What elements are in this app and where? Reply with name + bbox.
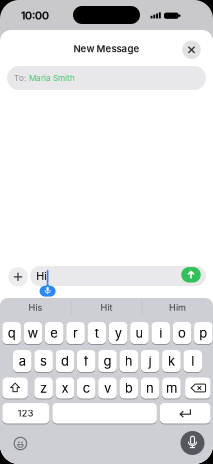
button[interactable]: 123 bbox=[2, 402, 49, 424]
staticText: Hi bbox=[36, 269, 47, 283]
button[interactable]: y bbox=[109, 321, 127, 344]
staticText: h bbox=[125, 353, 133, 369]
button[interactable]: His bbox=[2, 298, 68, 317]
staticText: b bbox=[125, 380, 133, 396]
staticText: e bbox=[50, 325, 58, 341]
staticText: d bbox=[61, 353, 69, 369]
button[interactable]: t bbox=[87, 321, 106, 344]
button[interactable]: j bbox=[141, 349, 159, 372]
button[interactable]: b bbox=[119, 377, 138, 399]
staticText: q bbox=[8, 325, 16, 341]
staticText: y bbox=[115, 325, 122, 341]
button[interactable]: k bbox=[162, 349, 181, 372]
button[interactable]: a bbox=[13, 349, 32, 372]
button[interactable]: Close bbox=[182, 40, 201, 59]
button[interactable]: Space bbox=[52, 402, 157, 424]
button[interactable]: p bbox=[194, 321, 213, 344]
button[interactable]: v bbox=[98, 377, 117, 399]
button[interactable]: g bbox=[98, 349, 117, 372]
staticText: Him bbox=[169, 302, 186, 313]
button[interactable]: Him bbox=[144, 298, 210, 317]
staticText: z bbox=[40, 380, 47, 396]
button[interactable]: z bbox=[34, 377, 53, 399]
button[interactable]: Dictate bbox=[180, 431, 204, 455]
button[interactable]: r bbox=[66, 321, 85, 344]
button[interactable]: Dictation bbox=[40, 283, 56, 297]
button[interactable]: h bbox=[119, 349, 138, 372]
staticText: k bbox=[168, 353, 175, 369]
staticText: n bbox=[146, 380, 154, 396]
button[interactable]: x bbox=[56, 377, 74, 399]
button[interactable]: w bbox=[24, 321, 42, 344]
staticText: r bbox=[73, 325, 78, 341]
staticText: s bbox=[40, 353, 47, 369]
staticText: x bbox=[61, 380, 68, 396]
button[interactable]: i bbox=[151, 321, 170, 344]
staticText: i bbox=[159, 325, 162, 341]
button[interactable]: q bbox=[2, 321, 21, 344]
staticText: j bbox=[149, 353, 152, 369]
button[interactable]: Delete bbox=[185, 377, 211, 399]
button[interactable]: l bbox=[183, 349, 202, 372]
button[interactable]: c bbox=[77, 377, 95, 399]
button[interactable]: Send bbox=[181, 267, 201, 283]
staticText: f bbox=[84, 353, 89, 369]
button[interactable]: f bbox=[77, 349, 95, 372]
button[interactable]: o bbox=[173, 321, 191, 344]
staticText: c bbox=[83, 380, 90, 396]
button[interactable]: m bbox=[162, 377, 181, 399]
button[interactable]: Hit bbox=[73, 298, 139, 317]
staticText: t bbox=[95, 325, 99, 341]
staticText: Maria Smith bbox=[29, 73, 75, 83]
button[interactable]: To: bbox=[7, 66, 206, 90]
staticText: a bbox=[19, 353, 26, 369]
staticText: To: bbox=[14, 73, 26, 83]
staticText: 123 bbox=[18, 408, 34, 419]
staticText: o bbox=[178, 325, 186, 341]
button[interactable]: s bbox=[34, 349, 53, 372]
staticText: w bbox=[27, 325, 38, 341]
staticText: u bbox=[135, 325, 143, 341]
staticText: l bbox=[191, 353, 194, 369]
staticText: New Message bbox=[73, 43, 139, 55]
button[interactable]: Apps bbox=[8, 267, 28, 287]
button[interactable]: d bbox=[56, 349, 74, 372]
staticText: His bbox=[28, 302, 42, 313]
staticText: v bbox=[104, 380, 111, 396]
staticText: m bbox=[166, 380, 177, 396]
staticText: g bbox=[103, 353, 111, 369]
staticText: p bbox=[199, 325, 207, 341]
button[interactable]: Return bbox=[160, 402, 211, 424]
button[interactable]: u bbox=[130, 321, 149, 344]
staticText: 10:00 bbox=[21, 9, 49, 22]
button[interactable]: e bbox=[45, 321, 64, 344]
button[interactable]: Shift bbox=[2, 377, 28, 399]
button[interactable]: Emoji bbox=[14, 437, 27, 450]
staticText: Hit bbox=[100, 302, 112, 313]
button[interactable]: n bbox=[141, 377, 159, 399]
